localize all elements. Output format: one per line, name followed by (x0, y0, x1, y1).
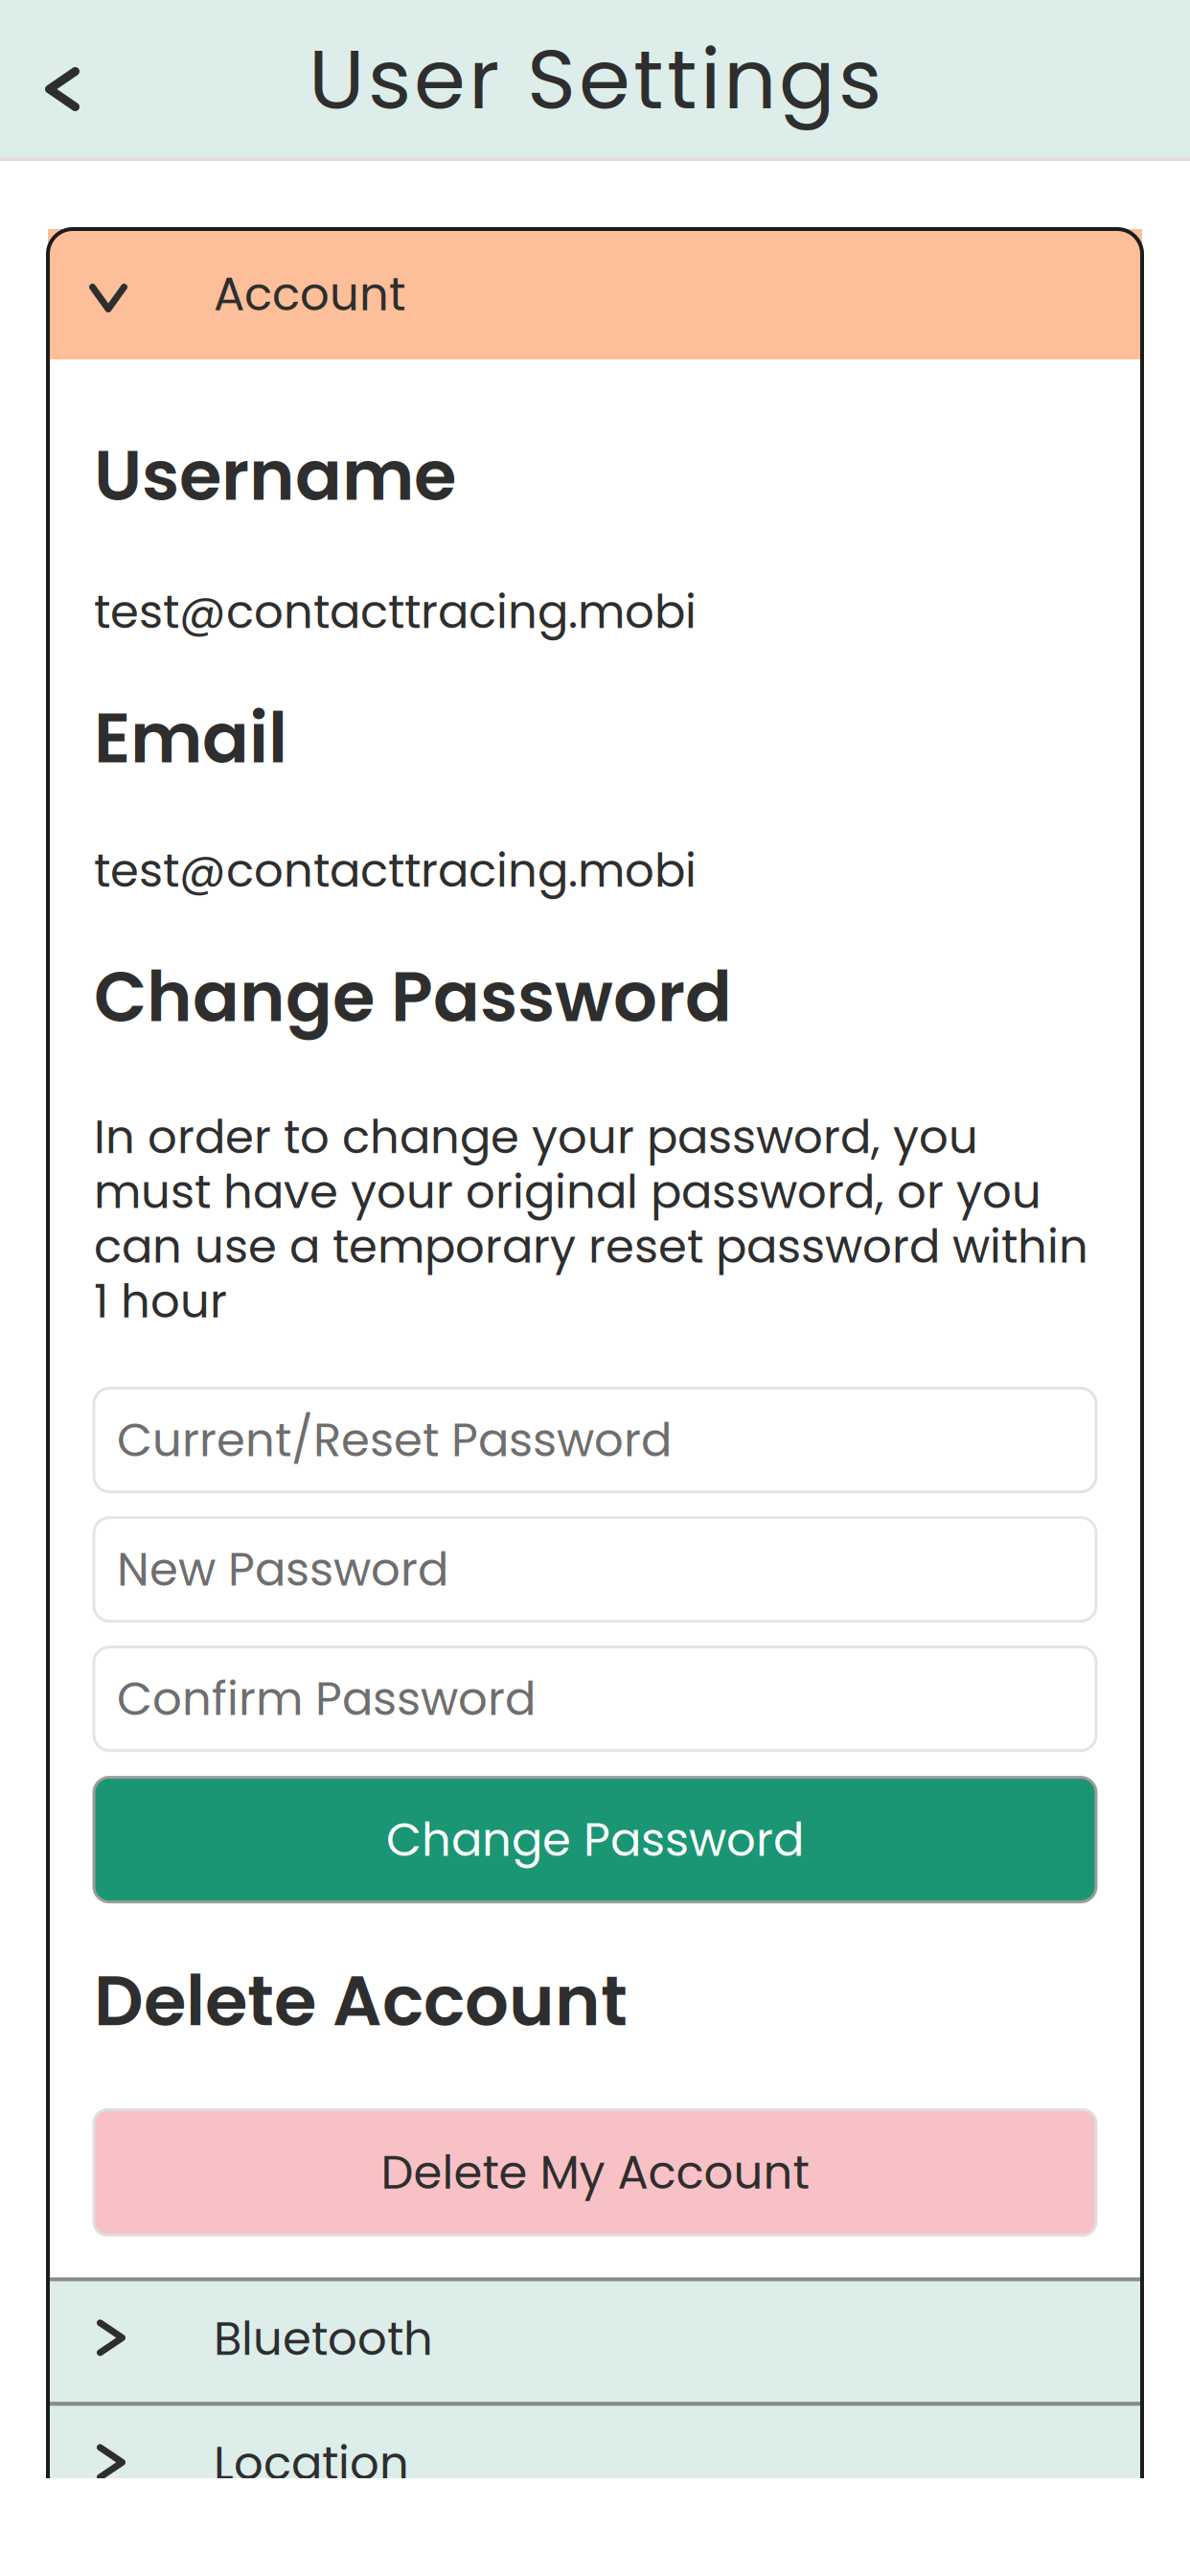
staticText: Current/Reset Password (117, 1408, 672, 1472)
button[interactable]: Delete My Account (94, 2110, 1096, 2235)
staticText: Location (214, 2431, 409, 2495)
staticText: test@contacttracing.mobi (94, 838, 697, 903)
staticText: Delete Account (94, 1953, 628, 2049)
staticText: test@contacttracing.mobi (94, 580, 697, 644)
staticText: Username (94, 427, 456, 524)
staticText: Confirm Password (117, 1667, 536, 1731)
staticText: Email (94, 690, 287, 787)
staticText: Account (214, 262, 405, 326)
staticText: Delete My Account (381, 2140, 809, 2205)
staticText: Change Password (94, 949, 732, 1045)
staticText: Change Password (386, 1807, 804, 1872)
button[interactable]: Change Password (94, 1777, 1096, 1902)
staticText: In order to change your password, you mu… (94, 1105, 1088, 1334)
button[interactable]: Account (48, 229, 1142, 359)
staticText: Bluetooth (214, 2307, 433, 2371)
button[interactable]: Bluetooth (48, 2279, 1142, 2404)
staticText: User Settings (309, 21, 881, 137)
button[interactable]: Location (48, 2404, 1142, 2528)
staticText: New Password (117, 1537, 448, 1602)
button[interactable]: Back (0, 0, 122, 153)
